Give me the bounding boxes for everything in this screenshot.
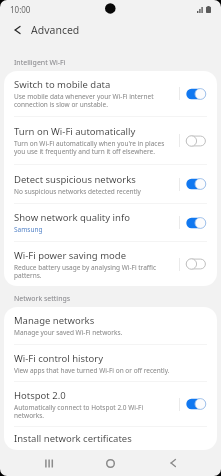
staticText: Automatically connect to Hotspot 2.0 Wi-… (14, 403, 144, 420)
button[interactable]: Recent apps (30, 451, 67, 475)
button[interactable]: Wi-Fi control history (4, 345, 217, 381)
button[interactable]: Manage networks (4, 307, 217, 344)
staticText: Detect suspicious networks (14, 173, 136, 186)
staticText: Wi-Fi control history (14, 352, 104, 365)
button[interactable]: Switch to mobile data (4, 71, 217, 116)
staticText: Advanced (31, 23, 80, 37)
staticText: No suspicious networks detected recently (14, 187, 141, 196)
button[interactable]: Turn on Wi-Fi automatically (4, 117, 217, 164)
button[interactable]: Show network quality info (186, 217, 206, 229)
button[interactable]: Detect suspicious networks (4, 165, 217, 203)
staticText: Manage your saved Wi-Fi networks. (14, 328, 123, 337)
staticText: Intelligent Wi-Fi (14, 58, 66, 68)
button[interactable]: Install network certificates (4, 427, 217, 450)
staticText: Manage networks (14, 314, 95, 327)
button[interactable]: Show network quality info (4, 204, 217, 241)
staticText: Install network certificates (14, 432, 132, 445)
button[interactable]: Detect suspicious networks (186, 178, 206, 190)
button[interactable]: Wi-Fi power saving mode (4, 242, 217, 286)
staticText: Turn on Wi-Fi automatically when you're … (14, 139, 165, 156)
button[interactable]: Wi-Fi power saving mode (186, 258, 206, 270)
button[interactable]: Back (154, 451, 191, 475)
button[interactable]: Home (92, 451, 129, 475)
button[interactable]: Back (9, 22, 25, 38)
button[interactable]: Hotspot 2.0 (186, 398, 206, 410)
button[interactable]: Hotspot 2.0 (4, 382, 217, 426)
staticText: Use mobile data whenever your Wi-Fi inte… (14, 92, 154, 109)
button[interactable]: Turn on Wi-Fi automatically (186, 135, 206, 147)
staticText: 10:00 (10, 4, 31, 15)
staticText: Switch to mobile data (14, 78, 111, 91)
staticText: Hotspot 2.0 (14, 389, 66, 402)
staticText: Show network quality info (14, 211, 130, 224)
staticText: Turn on Wi-Fi automatically (14, 125, 136, 138)
staticText: View apps that have turned Wi-Fi on or o… (14, 366, 170, 375)
staticText: Samsung (14, 225, 43, 234)
button[interactable]: Switch to mobile data (186, 88, 206, 100)
staticText: Network settings (14, 294, 71, 304)
staticText: Wi-Fi power saving mode (14, 249, 126, 262)
staticText: Reduce battery usage by analysing Wi-Fi … (14, 263, 157, 280)
